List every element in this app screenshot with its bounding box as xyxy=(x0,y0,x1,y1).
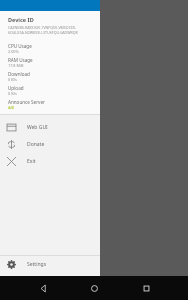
staticText: 2.00% xyxy=(8,49,19,54)
staticText: 0 B/s xyxy=(8,77,17,82)
button[interactable]: Web GUI xyxy=(0,119,100,136)
staticText: Web GUI xyxy=(27,124,48,131)
staticText: Exit xyxy=(27,158,36,165)
button[interactable]: Back xyxy=(34,279,52,297)
staticText: CAZN0B6-RAYX3GV-7VNFQ5V-VM5OCEX- xyxy=(8,25,77,30)
staticText: DEVICES xyxy=(6,44,27,51)
staticText: 4/4 xyxy=(8,105,14,110)
button[interactable]: Up to Date xyxy=(4,57,184,81)
staticText: Announce Server xyxy=(8,99,45,105)
staticText: 17.8 MiB xyxy=(8,63,24,68)
staticText: Upload xyxy=(8,85,24,91)
button[interactable]: Donate xyxy=(0,136,100,153)
button[interactable]: Recents xyxy=(137,279,155,297)
staticText: CPU Usage xyxy=(8,43,32,49)
staticText: Download xyxy=(8,71,30,77)
button[interactable]: Exit xyxy=(0,153,100,170)
button[interactable]: Home xyxy=(85,279,103,297)
staticText: Settings xyxy=(27,261,47,268)
button[interactable]: Settings xyxy=(0,256,100,273)
staticText: Donate xyxy=(27,141,45,148)
staticText: Device ID xyxy=(8,16,34,23)
staticText: 6O4LU5A-N2WK5SU-3TU6FQU-6ADWRQR xyxy=(8,30,78,35)
staticText: RAM Usage xyxy=(8,57,33,63)
staticText: 0 B/s xyxy=(8,91,17,96)
